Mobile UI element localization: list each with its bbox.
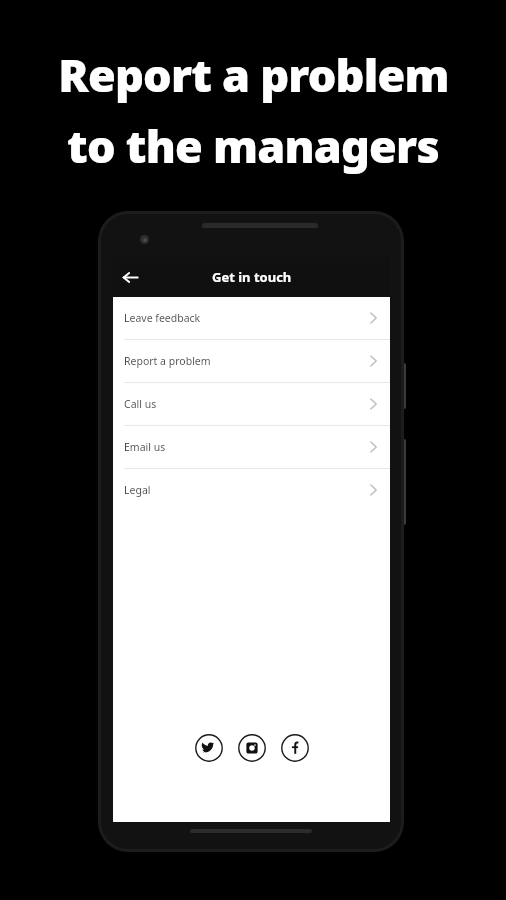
staticText: Leave feedback bbox=[124, 311, 201, 325]
button[interactable]: Facebook bbox=[281, 734, 309, 762]
staticText: Email us bbox=[124, 440, 166, 454]
button[interactable]: Report a problem bbox=[113, 340, 390, 382]
button[interactable]: Back bbox=[113, 260, 147, 294]
staticText: Report a problem bbox=[58, 44, 449, 105]
staticText: Call us bbox=[124, 397, 157, 411]
staticText: Report a problem bbox=[124, 354, 211, 368]
button[interactable]: Call us bbox=[113, 383, 390, 425]
button[interactable]: Email us bbox=[113, 426, 390, 468]
button[interactable]: Twitter bbox=[195, 734, 223, 762]
staticText: Get in touch bbox=[212, 268, 292, 286]
button[interactable]: Legal bbox=[113, 469, 390, 511]
staticText: to the managers bbox=[67, 115, 439, 176]
button[interactable]: Instagram bbox=[238, 734, 266, 762]
button[interactable]: Leave feedback bbox=[113, 297, 390, 339]
staticText: Legal bbox=[124, 483, 151, 497]
